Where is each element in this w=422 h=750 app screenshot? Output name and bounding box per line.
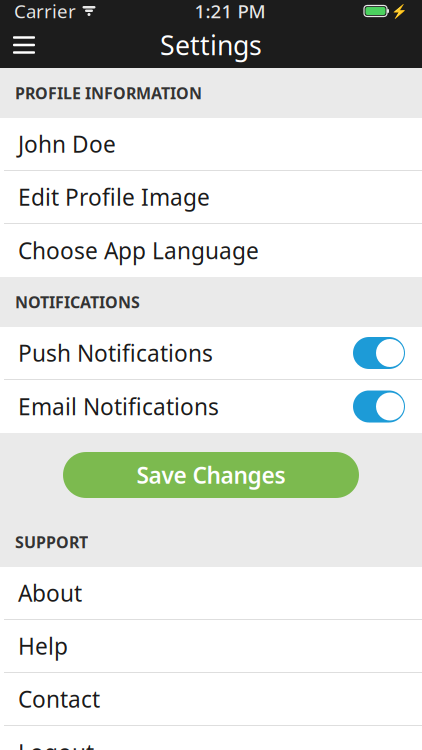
staticText: Email Notifications	[18, 391, 219, 421]
button[interactable]: Edit Profile Image	[0, 171, 422, 224]
staticText: SUPPORT	[15, 531, 88, 553]
button[interactable]: About	[0, 567, 422, 620]
staticText: Logout	[18, 737, 94, 750]
staticText: Choose App Language	[18, 235, 259, 265]
staticText: 1:21 PM	[194, 0, 265, 23]
button[interactable]: Save Changes	[63, 452, 359, 498]
button[interactable]: Menu	[0, 22, 48, 68]
staticText: Push Notifications	[18, 338, 213, 368]
button[interactable]: Help	[0, 620, 422, 673]
button[interactable]: Push Notifications	[353, 337, 405, 369]
button[interactable]: Choose App Language	[0, 224, 422, 277]
button[interactable]: John Doe	[0, 118, 422, 171]
button[interactable]: Email Notifications	[353, 390, 405, 422]
staticText: PROFILE INFORMATION	[15, 82, 202, 104]
staticText: Edit Profile Image	[18, 182, 210, 212]
staticText: ⚡	[391, 3, 408, 19]
staticText: Contact	[18, 684, 100, 714]
button[interactable]: Contact	[0, 673, 422, 726]
staticText: Settings	[160, 27, 262, 63]
staticText: NOTIFICATIONS	[15, 291, 140, 313]
button[interactable]: Logout	[0, 726, 422, 750]
staticText: Carrier	[14, 0, 76, 23]
staticText: John Doe	[18, 129, 116, 159]
staticText: Save Changes	[136, 460, 285, 490]
staticText: About	[18, 578, 82, 608]
staticText: Help	[18, 631, 68, 661]
